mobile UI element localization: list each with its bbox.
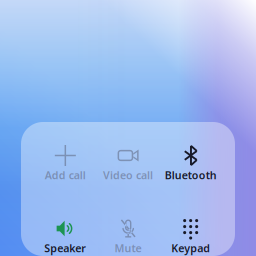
button[interactable]: Video call — [97, 135, 159, 208]
staticText: Video call — [103, 168, 153, 182]
button[interactable]: Keypad — [159, 208, 222, 256]
button[interactable]: Speaker — [34, 208, 97, 256]
button[interactable]: Bluetooth — [159, 135, 222, 208]
staticText: Speaker — [44, 241, 86, 255]
button[interactable]: Mute — [97, 208, 159, 256]
staticText: Keypad — [171, 241, 210, 255]
staticText: Bluetooth — [165, 168, 217, 182]
staticText: Add call — [45, 168, 86, 182]
button[interactable]: Add call — [34, 135, 97, 208]
staticText: Mute — [114, 241, 141, 255]
